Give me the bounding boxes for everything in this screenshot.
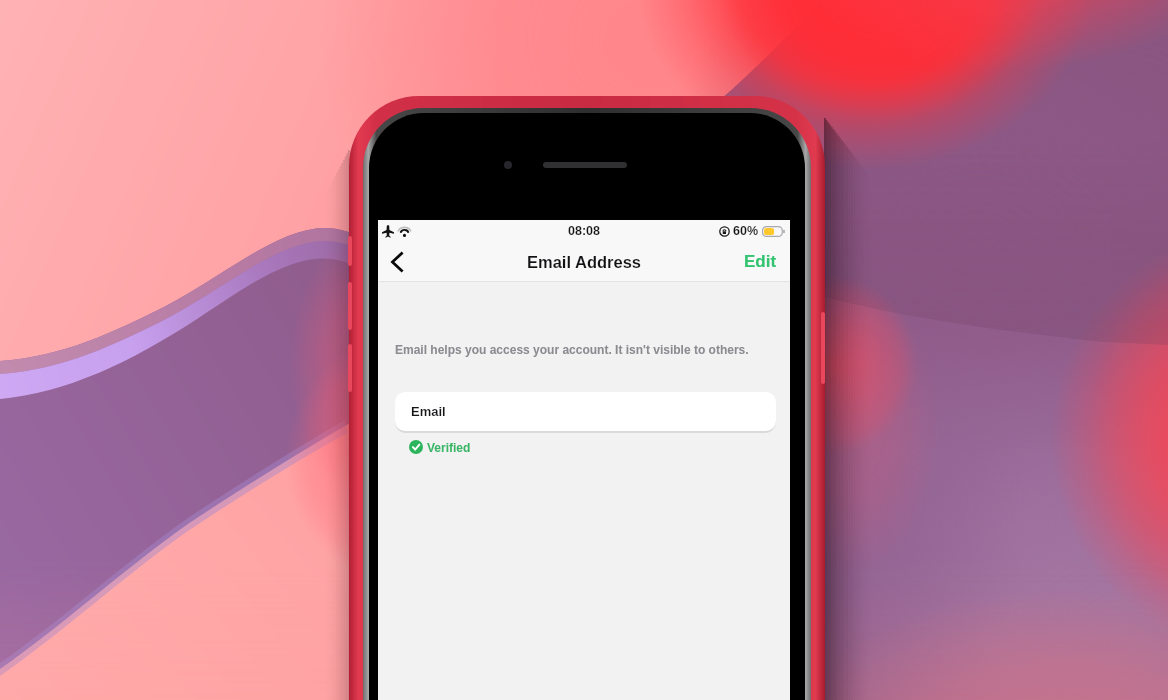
staticText: 08:08 (568, 224, 600, 238)
staticText: Email helps you access your account. It … (395, 343, 749, 356)
button[interactable]: Email (395, 392, 776, 431)
staticText: 60% (733, 224, 759, 238)
staticText: Verified (427, 441, 471, 454)
staticText: Email (411, 404, 446, 419)
button[interactable]: Back (378, 242, 416, 281)
button[interactable]: Verified (409, 440, 471, 454)
staticText: Edit (744, 252, 777, 271)
staticText: Email Address (527, 253, 642, 271)
button[interactable]: Edit (744, 242, 777, 281)
